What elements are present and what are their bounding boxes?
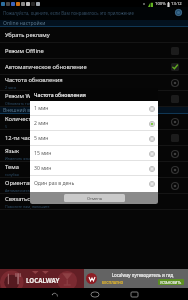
staticText: Localway путеводитель и гид bbox=[99, 272, 186, 278]
staticText: БЕСПЛАТНО bbox=[102, 280, 124, 285]
staticText: Помогите нам, напишите bbox=[5, 204, 50, 209]
staticText: УСТАНОВИТЬ bbox=[160, 280, 182, 284]
staticText: LOCALWAY bbox=[26, 276, 60, 284]
button[interactable]: Тема bbox=[0, 162, 188, 178]
button[interactable]: Один раз в день bbox=[30, 176, 158, 191]
button[interactable]: 2 мин bbox=[30, 116, 158, 131]
staticText: Убрать рекламу bbox=[5, 31, 50, 39]
staticText: Автоматически bbox=[5, 188, 32, 193]
staticText: Обновлять только по Wi-Fi bbox=[5, 101, 52, 106]
button[interactable]: 1 мин bbox=[30, 101, 158, 116]
staticText: Online настройки bbox=[3, 20, 46, 26]
staticText: 1 мин bbox=[34, 105, 49, 112]
staticText: 100% bbox=[155, 1, 166, 7]
staticText: Количество дней bbox=[5, 115, 54, 123]
button[interactable]: Убрать рекламу bbox=[0, 27, 188, 43]
staticText: Частота обновления bbox=[34, 91, 86, 98]
button[interactable]: Связаться с нами bbox=[0, 194, 188, 210]
staticText: Частота обновления bbox=[5, 76, 63, 84]
button[interactable]: Recent apps bbox=[119, 288, 150, 300]
staticText: 12-ти часовой формат bbox=[5, 134, 68, 142]
staticText: Внешний вид bbox=[3, 107, 37, 113]
button[interactable]: Язык bbox=[0, 146, 188, 162]
button[interactable]: Отмена bbox=[64, 194, 125, 202]
button[interactable]: 15 мин bbox=[30, 146, 158, 161]
button[interactable]: Режим Offline bbox=[0, 43, 188, 59]
button[interactable]: Автоматическое обновление bbox=[0, 59, 188, 75]
staticText: Пожалуйста, оцените, если Вам понравилос… bbox=[3, 10, 134, 16]
staticText: Автоматическое обновление bbox=[5, 63, 87, 71]
staticText: 5 bbox=[5, 124, 8, 129]
button[interactable]: Ориентация bbox=[0, 178, 188, 194]
staticText: 13:12 bbox=[171, 1, 182, 7]
button[interactable]: 30 мин bbox=[30, 161, 158, 176]
staticText: Отмена bbox=[87, 196, 102, 201]
staticText: Язык bbox=[5, 147, 20, 155]
staticText: 5 мин bbox=[34, 135, 49, 142]
staticText: голубая bbox=[5, 172, 19, 177]
staticText: 15 мин bbox=[34, 150, 52, 157]
button[interactable]: LOCALWAY bbox=[0, 269, 188, 288]
other: Rate this app bbox=[175, 9, 182, 16]
button[interactable]: 5 мин bbox=[30, 131, 158, 146]
button[interactable]: Home bbox=[79, 288, 110, 300]
staticText: Изменить язык bbox=[5, 156, 32, 161]
button[interactable]: Режим Wi-Fi bbox=[0, 91, 188, 107]
button[interactable]: 12-ти часовой формат bbox=[0, 130, 188, 146]
button[interactable]: Back bbox=[39, 288, 70, 300]
staticText: Режим Wi-Fi bbox=[5, 92, 39, 100]
staticText: Тема bbox=[5, 163, 19, 171]
staticText: Режим Offline bbox=[5, 47, 44, 55]
button[interactable]: УСТАНОВИТЬ bbox=[160, 280, 182, 284]
button[interactable]: Пожалуйста, оцените, если Вам понравилос… bbox=[0, 7, 188, 20]
button[interactable]: Частота обновления bbox=[0, 75, 188, 91]
staticText: 30 мин bbox=[34, 165, 52, 172]
staticText: 2 часа bbox=[5, 85, 16, 90]
staticText: Связаться с нами bbox=[5, 195, 55, 203]
staticText: 2 мин bbox=[34, 120, 49, 127]
staticText: Один раз в день bbox=[34, 180, 75, 187]
button[interactable]: Количество дней bbox=[0, 114, 188, 130]
staticText: Ориентация bbox=[5, 179, 40, 187]
